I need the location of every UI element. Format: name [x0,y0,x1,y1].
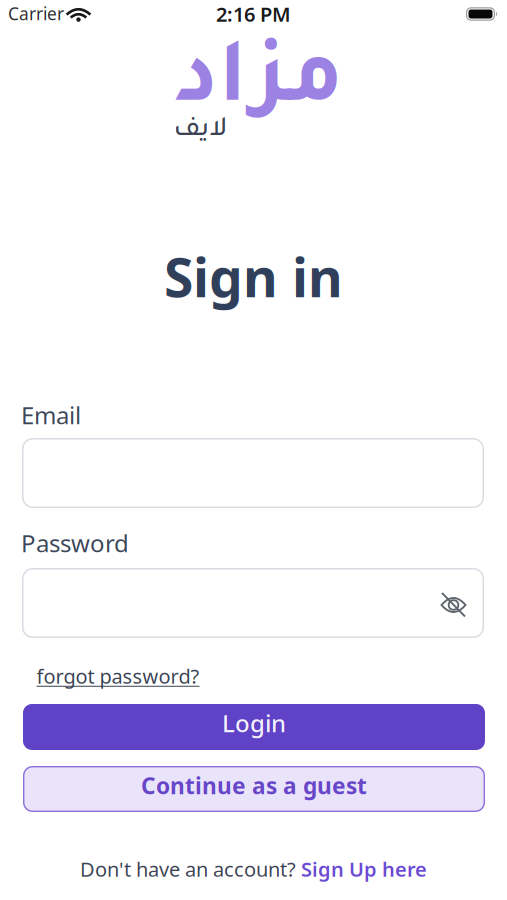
staticText: مزاد [174,40,343,132]
button[interactable]: forgot password? [36,663,199,689]
staticText: Email [21,399,81,431]
staticText: Carrier [8,2,64,25]
staticText: 2:16 PM [216,1,291,27]
button[interactable]: Email [22,438,484,508]
button[interactable]: Show password [439,592,467,618]
button[interactable]: Sign Up here [301,856,427,882]
staticText: Sign Up here [301,856,427,882]
staticText: لايف [173,117,227,145]
button[interactable]: Login [23,704,485,750]
staticText: Sign in [164,241,343,312]
staticText: Password [21,527,129,559]
staticText: Continue as a guest [141,770,367,800]
staticText: forgot password? [36,663,199,689]
staticText: Login [222,707,286,739]
button[interactable]: Password [22,568,484,638]
button[interactable]: Continue as a guest [23,766,485,812]
staticText: Don't have an account? [80,856,301,882]
